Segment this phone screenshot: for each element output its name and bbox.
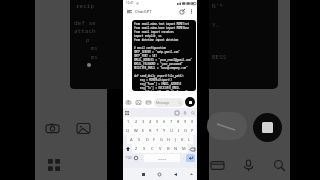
button[interactable]: Message	[154, 98, 184, 107]
button[interactable]: 6	[161, 117, 168, 126]
button[interactable]: 3	[140, 117, 147, 126]
button[interactable]: D	[143, 135, 151, 144]
button[interactable]: Files	[209, 157, 225, 173]
button[interactable]: Search	[271, 157, 287, 173]
staticText: N	[174, 146, 178, 151]
button[interactable]: V	[156, 144, 164, 153]
staticText: RECEIVER_EMAIL = "boss@company.com"	[134, 66, 188, 69]
button[interactable]: Home	[155, 170, 163, 178]
button[interactable]: Files	[106, 120, 107, 136]
staticText: I	[178, 128, 180, 133]
button[interactable]: Z	[132, 144, 140, 153]
button[interactable]: .	[181, 154, 185, 162]
staticText: M	[182, 146, 186, 151]
staticText: Q	[126, 128, 130, 133]
button[interactable]: ,	[139, 154, 143, 162]
staticText: 1	[127, 119, 130, 124]
staticText: A	[130, 137, 133, 142]
button[interactable]: Files	[145, 99, 152, 106]
button[interactable]: Photos	[75, 120, 91, 136]
button[interactable]: F	[151, 135, 158, 144]
button[interactable]: ?123	[124, 154, 133, 162]
button[interactable]: I	[175, 126, 182, 135]
button[interactable]: More options	[187, 7, 195, 15]
button[interactable]: M	[180, 144, 188, 153]
button[interactable]: E	[140, 126, 147, 135]
button[interactable]: Camera	[125, 99, 132, 106]
button[interactable]: T	[154, 126, 161, 135]
button[interactable]: A	[127, 135, 135, 144]
button[interactable]: Voice mode	[185, 97, 195, 107]
button[interactable]: Apps	[47, 158, 61, 172]
staticText: msg = MIMEMultipart()	[134, 78, 173, 81]
staticText: 9	[184, 119, 187, 124]
staticText: G	[160, 137, 163, 142]
staticText: from email import encoders	[134, 30, 174, 33]
staticText: K	[181, 137, 184, 142]
button[interactable]: 5	[154, 117, 161, 126]
button[interactable]: Space	[144, 154, 180, 162]
button[interactable]: U	[168, 126, 175, 135]
staticText: English	[158, 157, 167, 160]
staticText: W	[134, 128, 138, 133]
button[interactable]: 9	[182, 117, 189, 126]
button[interactable]: 1	[124, 117, 132, 126]
staticText: p	[86, 36, 90, 43]
button[interactable]: 8	[175, 117, 182, 126]
button[interactable]: H	[165, 135, 172, 144]
button[interactable]: Emoji	[133, 154, 139, 162]
staticText: import smtplib, os	[134, 34, 162, 37]
button[interactable]: R	[147, 126, 154, 135]
staticText: def send_daily_report(file_path):	[134, 74, 185, 77]
button[interactable]: Photos	[135, 99, 142, 106]
staticText: .	[183, 156, 184, 160]
staticText: 2	[135, 119, 138, 124]
staticText: S	[138, 137, 141, 142]
button[interactable]: Menu	[125, 7, 134, 16]
button[interactable]: O	[182, 126, 189, 135]
staticText: 4	[149, 119, 152, 124]
staticText: BESS	[212, 53, 227, 61]
button[interactable]: Shift	[124, 145, 132, 153]
button[interactable]: S	[135, 135, 143, 144]
staticText: ms	[91, 53, 98, 60]
staticText: from email.mime.text import MIMEText	[134, 22, 190, 25]
button[interactable]: X	[140, 144, 148, 153]
button[interactable]: Y	[161, 126, 168, 135]
button[interactable]: L	[186, 135, 193, 144]
button[interactable]: W	[132, 126, 140, 135]
staticText: J	[175, 137, 177, 142]
staticText: from email.mime.base import MIMEBase	[134, 26, 190, 29]
staticText: SMTP_PORT = 587	[134, 54, 157, 57]
button[interactable]: Camera	[44, 120, 60, 136]
staticText: E	[142, 128, 145, 133]
button[interactable]: P	[189, 126, 196, 135]
button[interactable]: Back	[171, 170, 179, 178]
staticText: ,	[141, 156, 142, 160]
button[interactable]: Q	[124, 126, 132, 135]
button[interactable]: 7	[168, 117, 175, 126]
button[interactable]: 2	[132, 117, 140, 126]
button[interactable]: Recents	[139, 170, 147, 178]
button[interactable]: Backspace	[188, 145, 196, 153]
button[interactable]: Voice	[240, 157, 256, 173]
staticText: 10:41	[126, 1, 134, 5]
button[interactable]: C	[148, 144, 156, 153]
button[interactable]: J	[172, 135, 179, 144]
button[interactable]: Hide keyboard	[187, 170, 195, 178]
staticText: N'*	[212, 2, 223, 10]
button[interactable]: Stop	[253, 113, 282, 142]
button[interactable]: B	[164, 144, 172, 153]
staticText: P	[191, 128, 194, 133]
button[interactable]: K	[179, 135, 186, 144]
button[interactable]: N	[172, 144, 180, 153]
staticText: attach	[74, 27, 96, 35]
staticText: Z	[135, 146, 138, 151]
staticText: U	[170, 128, 173, 133]
button[interactable]: New chat	[178, 7, 187, 16]
button[interactable]: Enter	[186, 154, 195, 162]
button[interactable]: 4	[147, 117, 154, 126]
button[interactable]: G	[158, 135, 165, 144]
button[interactable]: 0	[189, 117, 196, 126]
staticText: ChatGPT	[135, 9, 152, 14]
